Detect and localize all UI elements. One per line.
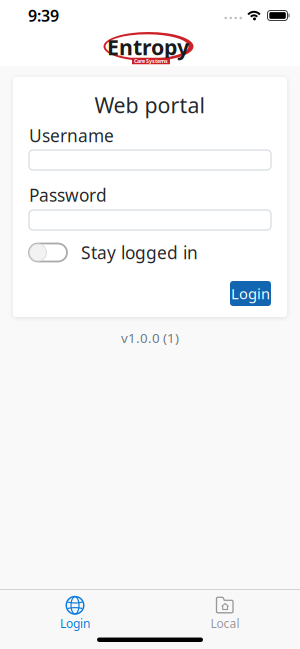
staticText: 9:39 (28, 5, 59, 26)
button[interactable]: Local (150, 596, 300, 631)
staticText: Web portal (94, 91, 205, 119)
staticText: Care Systems (134, 57, 168, 65)
staticText: Stay logged in (81, 241, 198, 264)
button[interactable] (29, 150, 271, 170)
staticText: Local (210, 615, 239, 631)
staticText: Login (231, 284, 270, 303)
button[interactable]: Stay logged in (29, 241, 198, 264)
button[interactable] (29, 210, 271, 230)
staticText: Login (60, 615, 90, 631)
button[interactable]: Login (0, 596, 150, 631)
staticText: v1.0.0 (1) (121, 329, 179, 347)
staticText: Entropy (107, 33, 189, 61)
button[interactable]: Login (230, 281, 271, 306)
staticText: Password (29, 183, 107, 206)
staticText: Username (29, 124, 114, 147)
